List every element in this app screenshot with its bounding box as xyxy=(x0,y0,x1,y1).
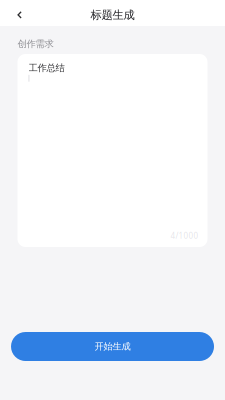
button[interactable]: 返回 xyxy=(0,0,30,26)
staticText: 4/1000 xyxy=(170,230,198,241)
staticText: 创作需求 xyxy=(17,38,53,50)
staticText: 开始生成 xyxy=(94,341,130,352)
staticText: 工作总结 xyxy=(28,62,64,74)
staticText: 标题生成 xyxy=(90,8,134,22)
button[interactable]: 开始生成 xyxy=(11,332,214,361)
